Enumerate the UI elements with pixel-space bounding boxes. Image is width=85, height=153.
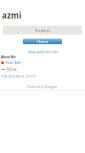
staticText: No posts. bbox=[34, 27, 50, 33]
staticText: Rasul Azmi bbox=[5, 61, 21, 64]
staticText: azmi bbox=[2, 10, 21, 21]
staticText: Home bbox=[37, 39, 48, 44]
staticText: Follow bbox=[7, 68, 16, 71]
staticText: View my complete profile bbox=[1, 75, 36, 78]
staticText: View web version bbox=[27, 49, 57, 54]
staticText: About Me bbox=[1, 55, 16, 59]
button[interactable]: Home bbox=[23, 39, 62, 44]
button[interactable]: View web version bbox=[0, 49, 85, 54]
staticText: Powered by Blogger. bbox=[27, 85, 58, 89]
button[interactable]: View my complete profile bbox=[1, 75, 36, 78]
